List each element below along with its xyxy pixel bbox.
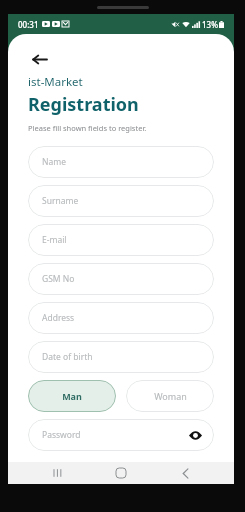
button[interactable]: Back [170, 463, 200, 483]
staticText: 13% [202, 19, 218, 30]
staticText: Please fill shown fields to register. [28, 123, 147, 133]
staticText: Address [42, 312, 75, 324]
button[interactable]: E-mail [28, 224, 214, 256]
staticText: Password [42, 429, 81, 441]
staticText: Name [42, 156, 66, 168]
button[interactable]: Address [28, 302, 214, 334]
button[interactable]: Name [28, 146, 214, 178]
button[interactable]: Back [28, 48, 50, 70]
button[interactable]: Man [28, 380, 116, 412]
button[interactable]: Home [106, 463, 136, 483]
button[interactable]: Date of birth [28, 341, 214, 373]
staticText: GSM No [42, 273, 75, 285]
button[interactable]: Recent apps [42, 463, 72, 483]
staticText: 00:31 [18, 19, 39, 30]
staticText: Surname [42, 195, 79, 207]
staticText: Registration [28, 92, 139, 117]
button[interactable]: GSM No [28, 263, 214, 295]
button[interactable]: Surname [28, 185, 214, 217]
staticText: E-mail [42, 234, 67, 246]
staticText: Woman [154, 390, 187, 402]
button[interactable]: Woman [126, 380, 214, 412]
button[interactable]: Show password [188, 428, 202, 442]
staticText: ist-Market [28, 74, 83, 90]
staticText: Date of birth [42, 351, 93, 363]
button[interactable]: Password [28, 419, 214, 451]
staticText: Man [62, 390, 82, 402]
